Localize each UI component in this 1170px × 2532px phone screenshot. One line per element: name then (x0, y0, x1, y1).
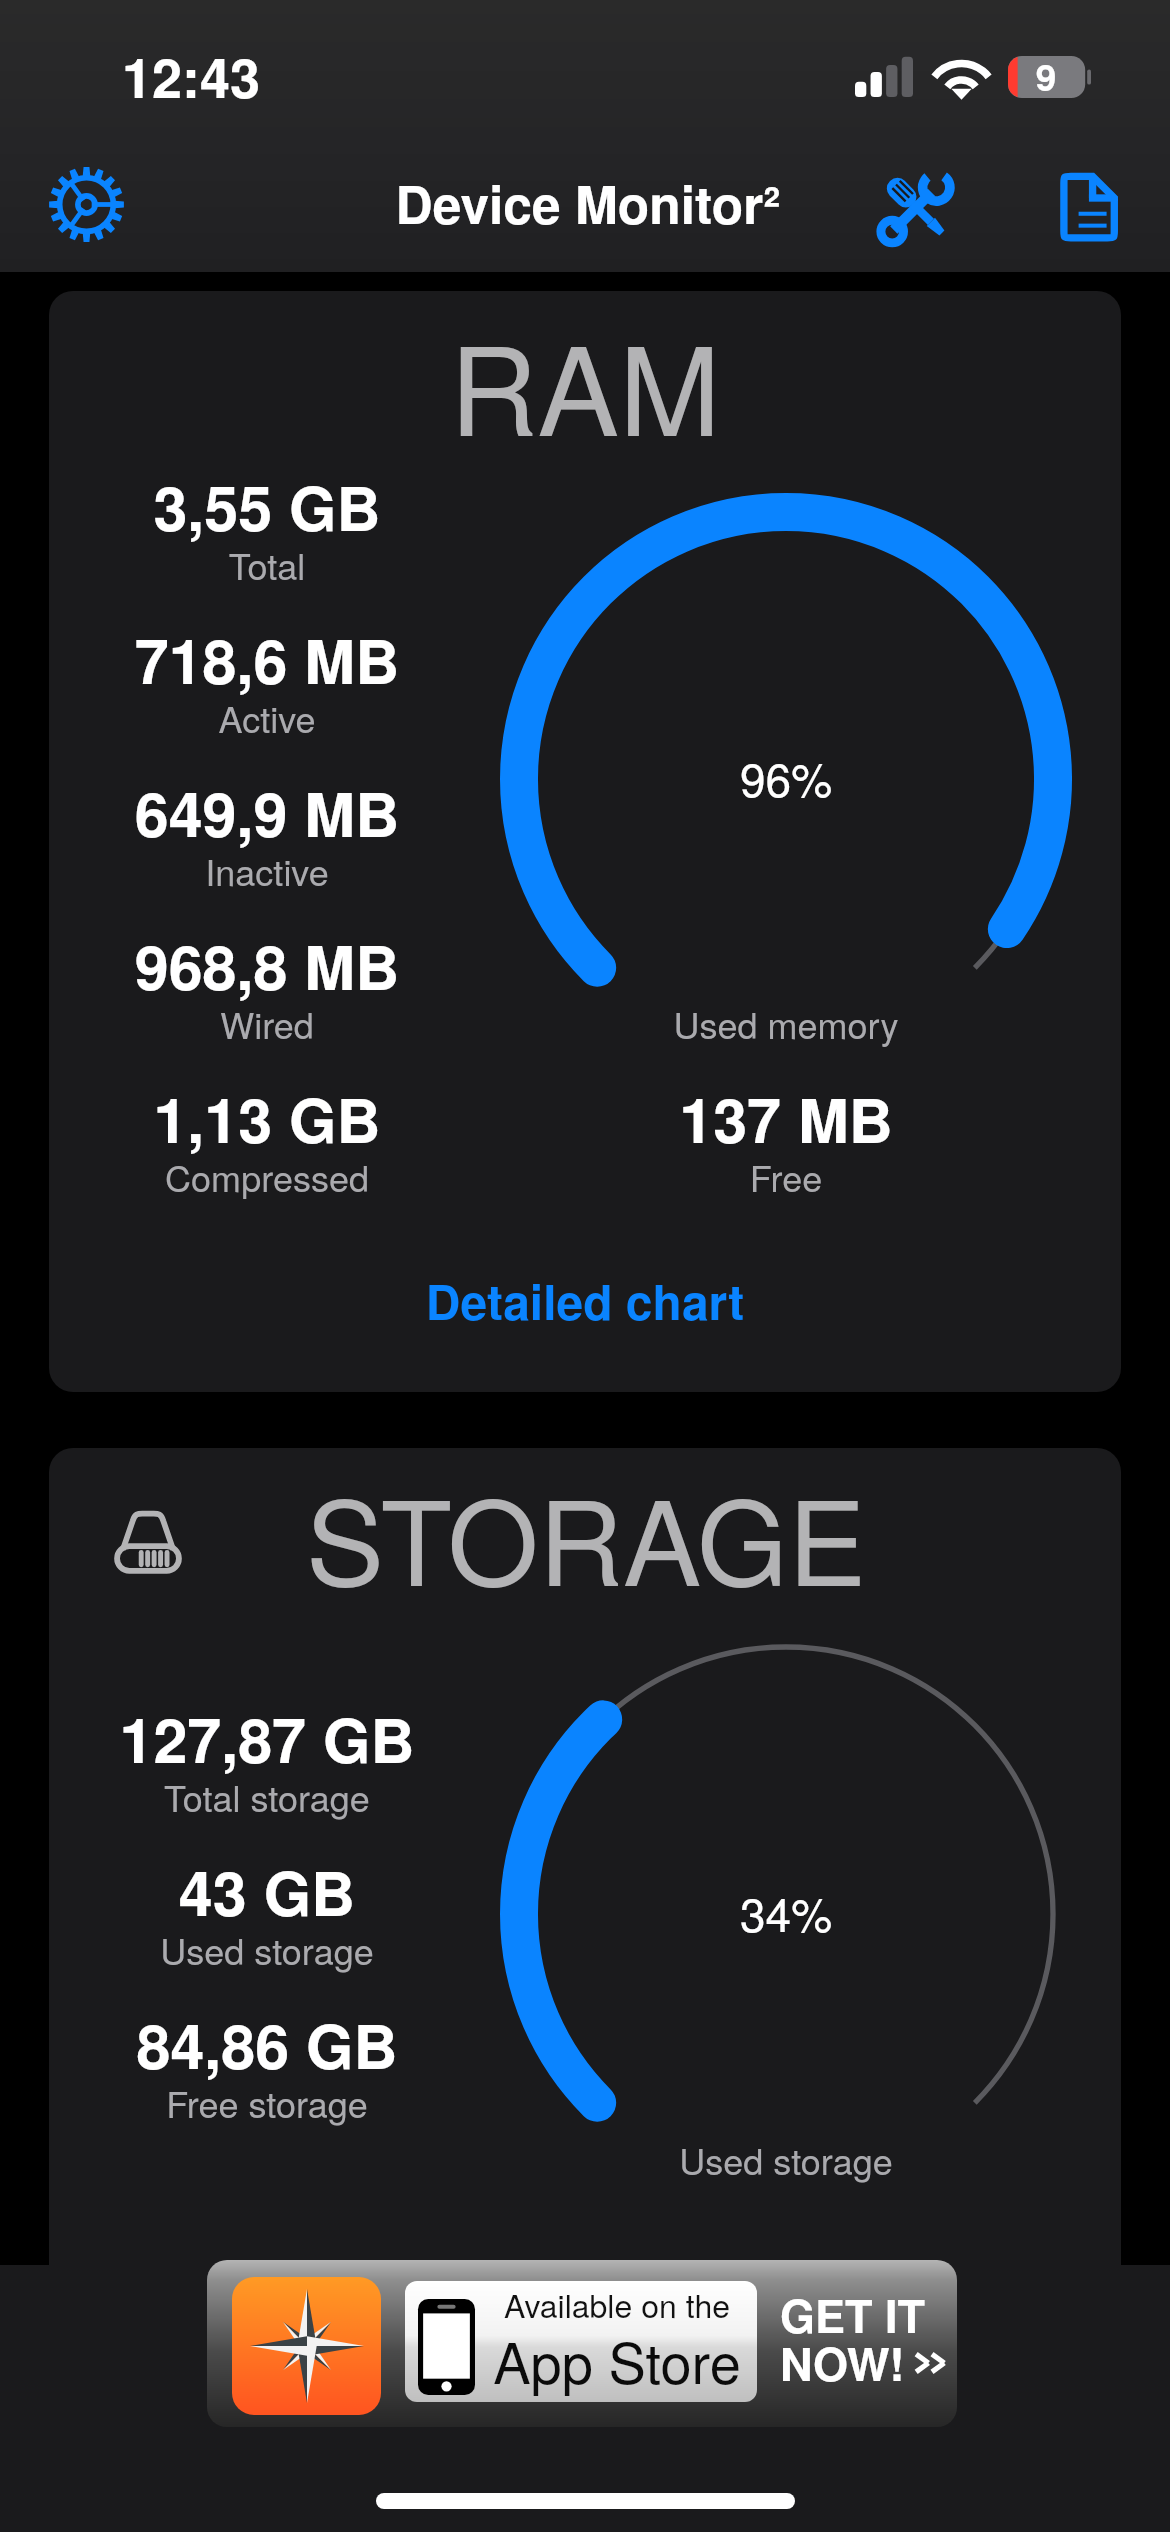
staticText: Available on the (491, 2281, 743, 2327)
staticText: 649,9 MB (49, 768, 567, 855)
staticText: 43 GB (49, 1847, 567, 1934)
staticText: GET IT (780, 2282, 926, 2346)
staticText: Wired (49, 998, 567, 1050)
button[interactable]: RAM (49, 291, 1121, 1392)
staticText: 84,86 GB (49, 2000, 567, 2087)
button[interactable]: Available on the (207, 2260, 957, 2427)
staticText: 127,87 GB (49, 1694, 567, 1781)
staticText: Total (49, 539, 567, 591)
button[interactable]: Tools (866, 157, 966, 257)
staticText: 137 MB (486, 1074, 1086, 1161)
staticText: 968,8 MB (49, 921, 567, 1008)
staticText: Total storage (49, 1771, 567, 1823)
button[interactable]: Detailed chart (365, 1265, 805, 1345)
staticText: 12:43 (61, 37, 321, 114)
staticText: RAM (185, 296, 985, 471)
staticText: NOW! (780, 2330, 905, 2394)
staticText: Free storage (49, 2077, 567, 2129)
staticText: 3,55 GB (49, 462, 567, 549)
staticText: Active (49, 692, 567, 744)
button[interactable]: Settings (36, 154, 136, 254)
button[interactable]: STORAGE (49, 1448, 1121, 2348)
staticText: Used memory (486, 998, 1086, 1050)
staticText: 718,6 MB (49, 615, 567, 702)
staticText: 1,13 GB (49, 1074, 567, 1161)
staticText: Detailed chart (365, 1266, 805, 1335)
staticText: Free (486, 1151, 1086, 1203)
staticText: 96% (586, 744, 986, 810)
staticText: Device Monitor² (188, 166, 988, 240)
staticText: 34% (586, 1879, 986, 1945)
button[interactable]: Report (1037, 155, 1137, 255)
staticText: Used storage (486, 2134, 1086, 2186)
staticText: App Store (491, 2320, 743, 2400)
staticText: STORAGE (136, 1452, 1036, 1620)
staticText: Inactive (49, 845, 567, 897)
staticText: Used storage (49, 1924, 567, 1976)
staticText: Compressed (49, 1151, 567, 1203)
staticText: 9 (1006, 49, 1086, 102)
